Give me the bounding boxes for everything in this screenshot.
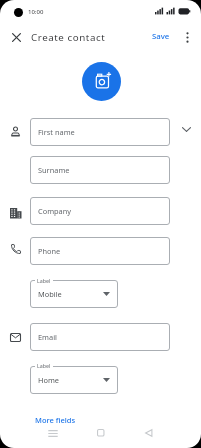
button[interactable]: Home: [30, 366, 118, 394]
staticText: 10:00: [28, 8, 44, 16]
staticText: Email: [38, 332, 57, 342]
button[interactable]: [92, 425, 109, 441]
button[interactable]: Surname: [30, 156, 170, 184]
staticText: First name: [38, 127, 75, 137]
staticText: Home: [38, 375, 60, 385]
button[interactable]: [140, 425, 157, 441]
staticText: Label: [37, 362, 51, 369]
staticText: Create contact: [31, 31, 106, 44]
button[interactable]: Mobile: [30, 280, 118, 308]
staticText: Company: [38, 206, 72, 216]
button[interactable]: [179, 123, 193, 136]
button[interactable]: Company: [30, 197, 170, 225]
button[interactable]: First name: [30, 118, 170, 146]
button[interactable]: [7, 28, 25, 46]
button[interactable]: Email: [30, 323, 170, 351]
button[interactable]: [44, 425, 61, 441]
button[interactable]: Save: [146, 28, 176, 45]
staticText: Phone: [38, 246, 61, 256]
button[interactable]: Phone: [30, 237, 170, 265]
button[interactable]: More fields: [35, 415, 76, 425]
button[interactable]: [82, 62, 121, 101]
staticText: Label: [37, 277, 51, 284]
staticText: Mobile: [38, 289, 62, 299]
staticText: Surname: [38, 165, 70, 175]
button[interactable]: [180, 28, 194, 46]
staticText: Save: [152, 31, 170, 42]
